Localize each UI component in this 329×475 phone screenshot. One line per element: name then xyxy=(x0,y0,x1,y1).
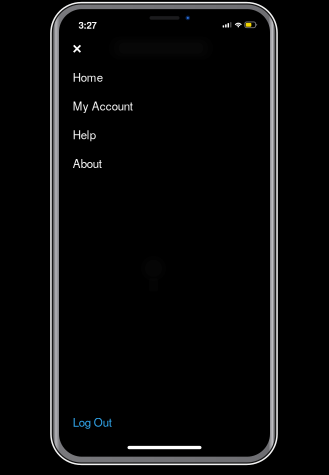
staticText: My Account xyxy=(73,97,133,114)
staticText: 3:27 xyxy=(78,18,96,32)
button[interactable]: Close menu xyxy=(59,40,90,57)
button[interactable]: Log Out xyxy=(59,410,270,434)
staticText: Help xyxy=(73,126,96,142)
staticText: Home xyxy=(73,68,103,85)
button[interactable]: Home xyxy=(59,62,270,91)
staticText: About xyxy=(73,155,102,171)
button[interactable]: Help xyxy=(59,120,270,149)
button[interactable]: About xyxy=(59,149,270,177)
staticText: Log Out xyxy=(73,414,112,430)
button[interactable]: My Account xyxy=(59,91,270,120)
